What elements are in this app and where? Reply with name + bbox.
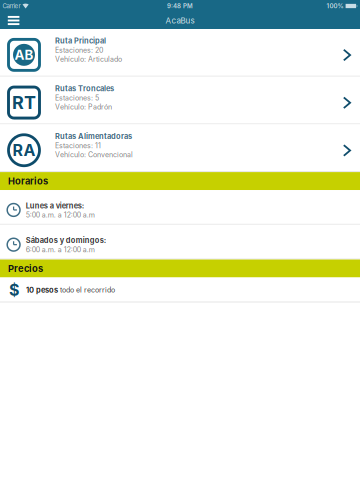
- staticText: Horarios: [8, 175, 48, 187]
- staticText: Estaciones: 11: [55, 141, 101, 150]
- staticText: 6:00 a.m. a 12:00 a.m: [26, 245, 95, 254]
- staticText: 9:48 PM: [167, 2, 193, 10]
- staticText: RT: [12, 92, 36, 113]
- staticText: Vehículo: Padrón: [55, 103, 112, 111]
- staticText: Rutas Troncales: [55, 84, 114, 93]
- button[interactable]: RA: [0, 124, 360, 172]
- staticText: Carrier: [2, 2, 20, 10]
- staticText: AB: [14, 47, 33, 63]
- staticText: Sábados y domingos:: [26, 236, 106, 245]
- staticText: Ruta Principal: [55, 36, 106, 45]
- staticText: Estaciones: 20: [55, 46, 103, 54]
- staticText: Lunes a viernes:: [26, 201, 84, 210]
- staticText: Precios: [8, 263, 43, 274]
- button[interactable]: Menu: [0, 12, 28, 29]
- staticText: Vehículo: Articulado: [55, 55, 122, 63]
- staticText: todo el recorrido: [58, 286, 115, 294]
- staticText: 100%: [327, 2, 344, 10]
- staticText: 10 pesos: [26, 285, 58, 294]
- staticText: $: [9, 280, 19, 300]
- staticText: 5:00 a.m. a 12:00 a.m: [26, 211, 95, 219]
- staticText: AcaBus: [165, 16, 194, 25]
- staticText: Vehículo: Convencional: [55, 150, 133, 159]
- staticText: RA: [12, 141, 35, 160]
- button[interactable]: RT: [0, 77, 360, 124]
- staticText: Estaciones: 5: [55, 94, 99, 102]
- button[interactable]: AB: [0, 29, 360, 77]
- staticText: Rutas Alimentadoras: [55, 132, 132, 141]
